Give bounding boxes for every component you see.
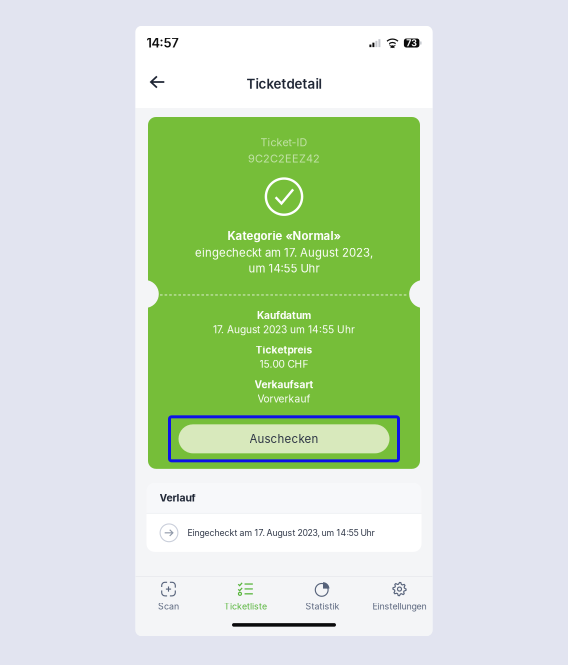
staticText: 73 [406,38,417,48]
staticText: um 14:55 Uhr [248,262,319,275]
staticText: Ticket-ID [260,136,307,149]
staticText: Auschecken [249,432,318,446]
staticText: 9C2C2EEZ42 [248,152,320,165]
staticText: Kaufdatum [257,309,311,322]
staticText: Verlauf [159,491,195,504]
button[interactable]: Statistik [290,577,354,613]
button[interactable]: Back [142,72,172,96]
staticText: 14:57 [146,35,178,51]
staticText: 17. August 2023 um 14:55 Uhr [213,323,355,336]
staticText: Einstellungen [372,601,426,612]
staticText: eingecheckt am 17. August 2023, [195,246,373,259]
button[interactable]: Einstellungen [367,577,431,613]
button[interactable]: Ticketliste [213,577,277,613]
staticText: Eingecheckt am 17. August 2023, um 14:55… [187,528,374,538]
staticText: Vorverkauf [257,393,310,405]
button[interactable]: Eingecheckt am 17. August 2023, um 14:55… [146,514,421,552]
button[interactable]: Scan [136,577,200,613]
staticText: Ticketliste [224,601,267,612]
staticText: Kategorie «Normal» [227,229,340,243]
staticText: Ticketdetail [246,76,321,92]
button[interactable]: Auschecken [169,417,398,461]
staticText: Ticketpreis [255,344,312,356]
staticText: 15.00 CHF [259,358,308,370]
staticText: Verkaufsart [254,378,313,391]
staticText: Statistik [305,601,339,612]
staticText: Scan [158,601,179,612]
